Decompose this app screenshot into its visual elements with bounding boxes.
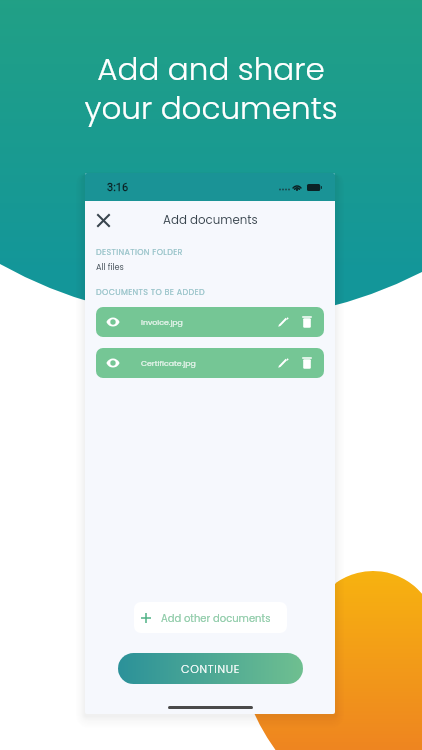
staticText: DESTINATION FOLDER [96,247,183,258]
button[interactable]: Edit [272,352,294,374]
staticText: Add other documents [161,611,271,625]
staticText: Add and share your documents [0,47,422,129]
staticText: Invoice.jpg [141,317,183,328]
staticText: CONTINUE [181,661,240,676]
button[interactable]: Invoice.jpg [96,307,324,337]
button[interactable]: Edit [272,311,294,333]
staticText: DOCUMENTS TO BE ADDED [96,287,206,298]
button[interactable]: Add other documents [134,602,287,633]
staticText: Add documents [163,212,258,229]
button[interactable]: CONTINUE [118,653,303,684]
staticText: All files [96,261,124,272]
button[interactable]: Close [89,206,117,234]
button[interactable]: Delete [296,352,318,374]
button[interactable]: Certificate.jpg [96,348,324,378]
staticText: Certificate.jpg [141,358,196,369]
staticText: 3:16 [107,181,129,194]
button[interactable]: Delete [296,311,318,333]
